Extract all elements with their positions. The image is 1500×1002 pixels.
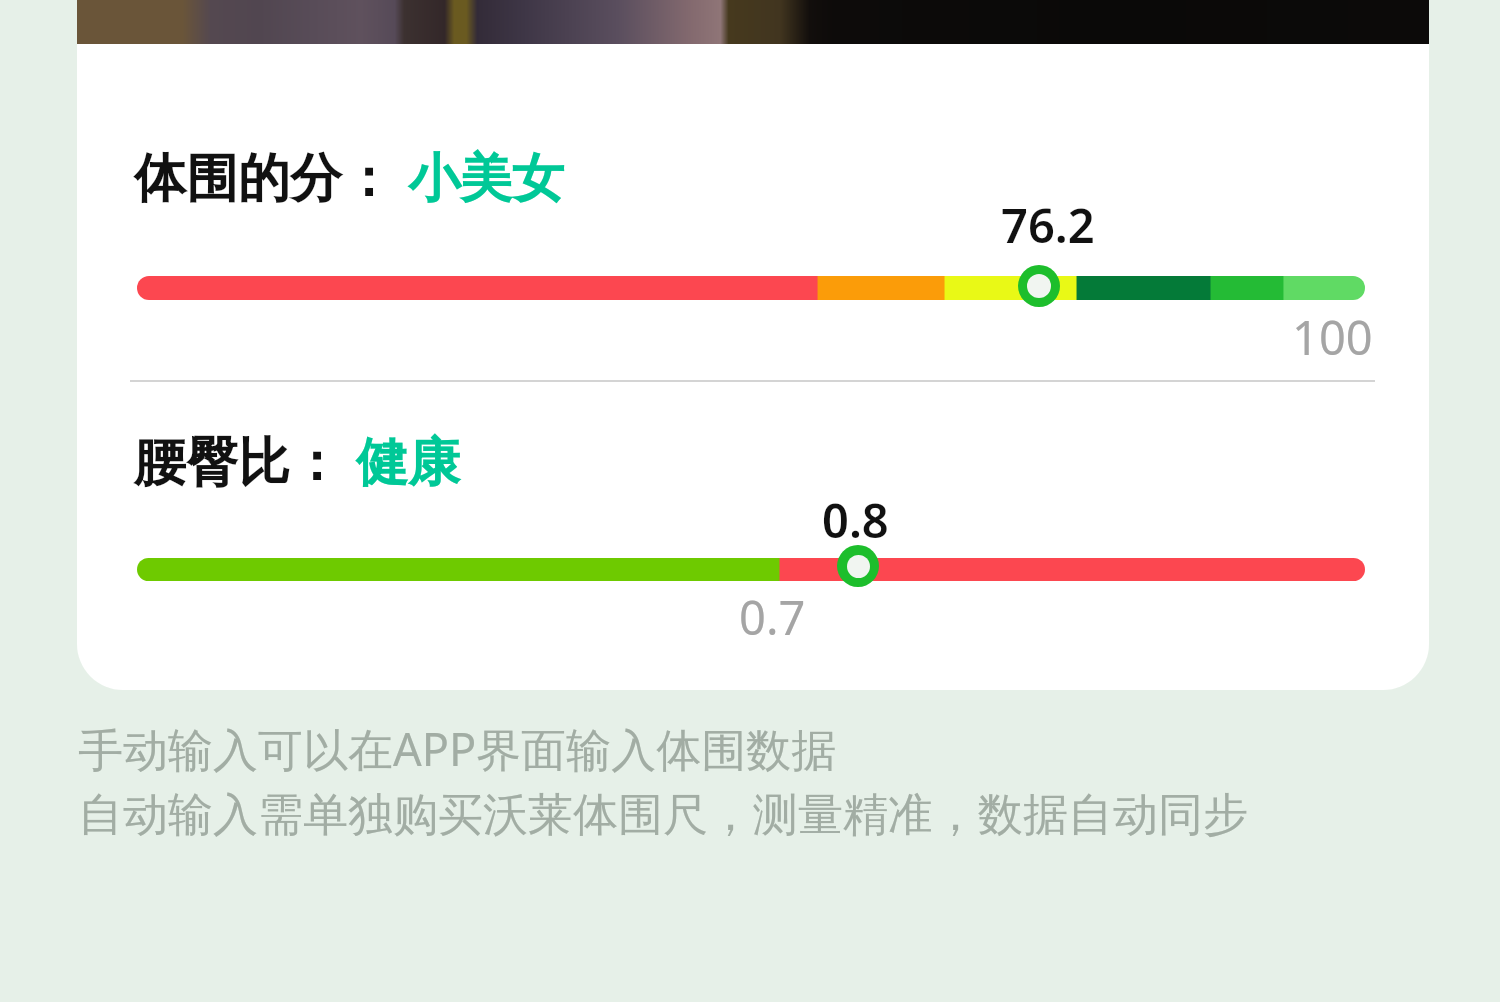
other: Body photo: [77, 0, 1429, 44]
button[interactable]: Waist hip ratio scale: [137, 558, 1365, 581]
staticText: 0.7: [739, 585, 806, 649]
staticText: 100: [1292, 305, 1373, 369]
button[interactable]: Waist hip ratio marker: [837, 545, 879, 587]
button[interactable]: 76.2: [958, 193, 1138, 257]
button[interactable]: 0.7: [682, 585, 862, 649]
button[interactable]: Body photo: [77, 0, 1429, 690]
button[interactable]: Body score marker: [1018, 265, 1060, 307]
staticText: 76.2: [1001, 193, 1095, 257]
button[interactable]: 0.8: [765, 488, 945, 552]
button[interactable]: 自动输入需单独购买沃莱体围尺，测量精准，数据自动同步: [78, 787, 1248, 844]
staticText: 健康: [356, 430, 460, 496]
button[interactable]: 100: [1173, 305, 1373, 369]
staticText: 0.8: [822, 488, 889, 552]
staticText: 体围的分：: [134, 146, 394, 212]
staticText: 小美女: [408, 146, 564, 212]
button[interactable]: 手动输入可以在APP界面输入体围数据: [78, 718, 837, 779]
button[interactable]: 体围的分：: [134, 146, 564, 212]
staticText: 腰臀比：: [134, 430, 342, 496]
button[interactable]: 腰臀比：: [134, 430, 460, 496]
button[interactable]: Body score scale: [137, 276, 1365, 300]
